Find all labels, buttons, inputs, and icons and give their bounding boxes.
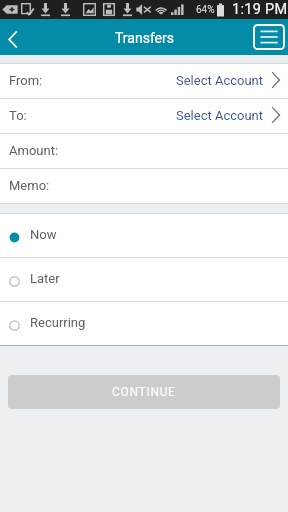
staticText: 64% bbox=[196, 4, 215, 16]
staticText: From: bbox=[9, 73, 43, 88]
button[interactable]: CONTINUE bbox=[8, 375, 280, 409]
staticText: Select Account bbox=[176, 108, 264, 123]
button[interactable]: Amount: bbox=[0, 134, 288, 168]
button[interactable]: Later bbox=[0, 258, 288, 301]
button[interactable]: Memo: bbox=[0, 169, 288, 203]
button[interactable]: To: bbox=[0, 99, 288, 133]
staticText: Transfers bbox=[115, 30, 174, 46]
button[interactable]: Menu bbox=[253, 24, 285, 50]
staticText: 1:19 PM bbox=[232, 1, 288, 18]
staticText: To: bbox=[9, 108, 27, 123]
staticText: Memo: bbox=[9, 178, 50, 193]
button[interactable]: From: bbox=[0, 64, 288, 98]
button[interactable]: Back bbox=[0, 19, 26, 55]
staticText: CONTINUE bbox=[112, 385, 176, 399]
button[interactable]: Recurring bbox=[0, 302, 288, 345]
staticText: Amount: bbox=[9, 143, 59, 158]
staticText: Recurring bbox=[30, 315, 86, 330]
staticText: Select Account bbox=[176, 73, 264, 88]
staticText: Now bbox=[30, 227, 57, 242]
staticText: Later bbox=[30, 271, 60, 286]
button[interactable]: Now bbox=[0, 214, 288, 257]
